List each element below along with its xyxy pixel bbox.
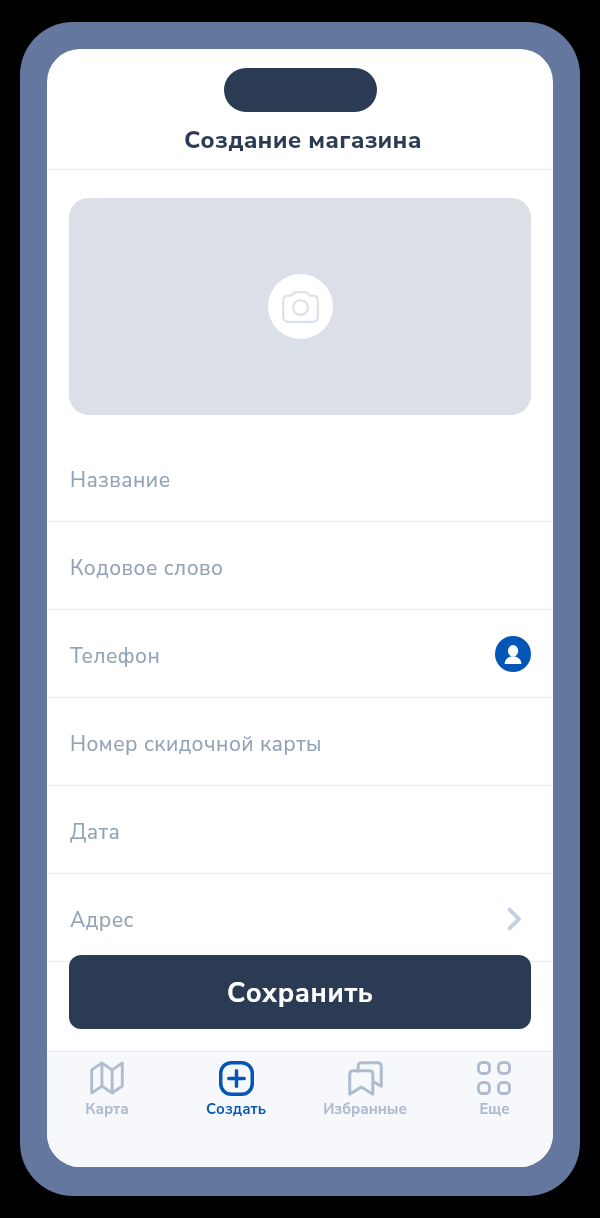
button[interactable]: Сохранить [69,955,531,1029]
button[interactable]: Адрес [47,874,553,962]
staticText: Название [70,466,171,495]
button[interactable]: Еще [434,1052,553,1167]
button[interactable]: Создать [176,1052,296,1167]
button[interactable]: Телефон [47,610,553,698]
staticText: Адрес [70,906,135,935]
staticText: Номер скидочной карты [70,730,322,759]
button[interactable]: Карта [47,1052,167,1167]
staticText: Избранные [323,1099,407,1119]
button[interactable]: Избранные [305,1052,425,1167]
staticText: Еще [479,1099,510,1119]
staticText: Дата [70,818,121,847]
staticText: Телефон [70,642,161,671]
staticText: Создать [206,1099,266,1119]
button[interactable]: Добавить фото [69,198,531,415]
staticText: Сохранить [227,975,374,1012]
button[interactable]: Открыть адрес [495,900,531,936]
button[interactable]: Кодовое слово [47,522,553,610]
button[interactable]: Название [47,434,553,522]
staticText: Кодовое слово [70,554,224,583]
button[interactable]: Номер скидочной карты [47,698,553,786]
staticText: Создание магазина [184,124,422,157]
button[interactable]: Выбрать контакт [495,636,531,672]
button[interactable]: Дата [47,786,553,874]
staticText: Карта [85,1099,129,1119]
